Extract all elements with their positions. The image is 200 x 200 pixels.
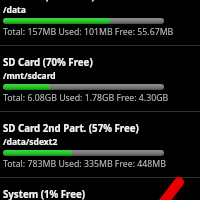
staticText: Total: 783MB Used: 335MB Free: 448MB — [3, 158, 166, 170]
button[interactable]: System (1% Free) — [0, 177, 200, 200]
staticText: Internal (35% Free) — [3, 0, 95, 3]
button[interactable]: SD Card 2nd Part. (57% Free) — [0, 111, 200, 177]
button[interactable]: SD Card (70% Free) — [0, 45, 200, 111]
button[interactable]: Internal (35% Free) — [0, 0, 200, 45]
staticText: SD Card 2nd Part. (57% Free) — [3, 122, 139, 135]
staticText: Total: 6.08GB Used: 1.78GB Free: 4.30GB — [3, 92, 169, 104]
staticText: /data/sdext2 — [3, 136, 58, 148]
staticText: /mnt/sdcard — [3, 70, 56, 82]
staticText: SD Card (70% Free) — [3, 56, 93, 69]
staticText: System (1% Free) — [3, 188, 86, 200]
staticText: /data — [3, 4, 26, 16]
staticText: Total: 157MB Used: 101MB Free: 55.67MB — [3, 26, 174, 38]
